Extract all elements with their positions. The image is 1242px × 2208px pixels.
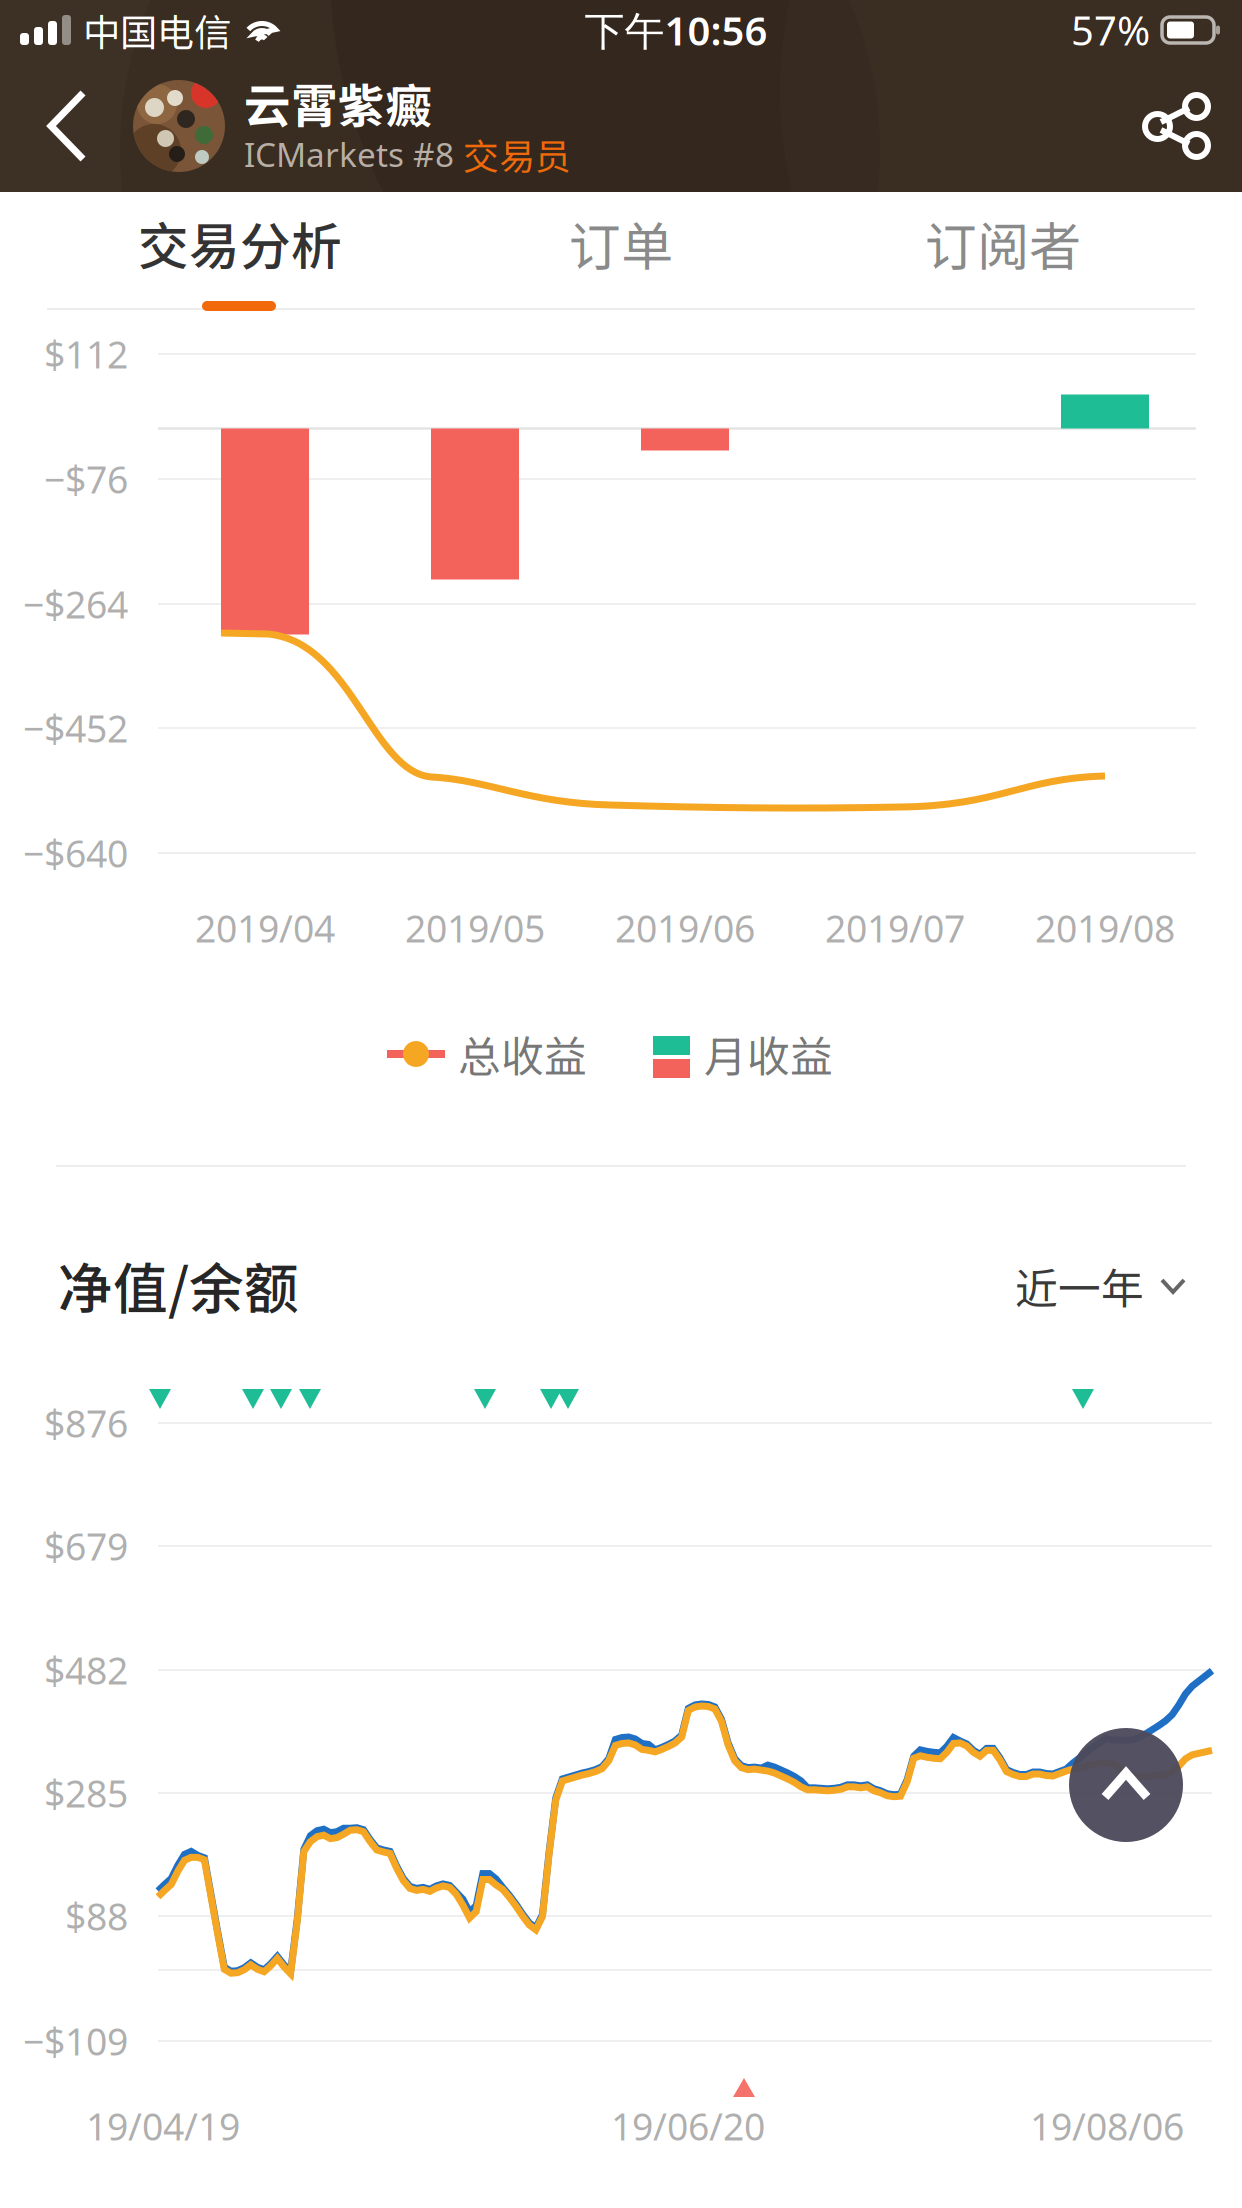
staticText: −$452 <box>23 703 128 753</box>
staticText: 下午10:56 <box>584 3 767 56</box>
staticText: 2019/04 <box>195 903 335 953</box>
staticText: 2019/05 <box>405 903 545 953</box>
button[interactable]: 交易分析 <box>55 189 425 297</box>
staticText: 订阅者 <box>925 205 1081 281</box>
button[interactable]: 订单 <box>471 189 771 297</box>
staticText: −$76 <box>44 454 128 504</box>
staticText: $112 <box>44 329 128 379</box>
staticText: 2019/07 <box>825 903 965 953</box>
staticText: 总收益 <box>458 1023 587 1085</box>
staticText: 2019/06 <box>615 903 755 953</box>
staticText: $285 <box>44 1768 128 1818</box>
staticText: 交易分析 <box>138 206 342 280</box>
staticText: $88 <box>65 1891 128 1941</box>
staticText: 近一年 <box>1015 1255 1144 1317</box>
button[interactable]: Share <box>1114 60 1242 192</box>
staticText: 订单 <box>569 205 673 281</box>
staticText: 19/06/20 <box>611 2101 765 2151</box>
staticText: 交易员 <box>463 128 571 180</box>
button[interactable]: Back <box>0 60 90 192</box>
staticText: 19/04/19 <box>86 2101 240 2151</box>
staticText: $482 <box>44 1645 128 1695</box>
button[interactable]: Scroll to top <box>1057 1716 1195 1854</box>
button[interactable]: 订阅者 <box>838 189 1168 297</box>
staticText: $876 <box>44 1398 128 1448</box>
staticText: −$264 <box>23 579 128 629</box>
staticText: 净值/余额 <box>58 1245 299 1325</box>
staticText: 月收益 <box>704 1023 833 1085</box>
staticText: 云霄紫癜 <box>244 69 432 137</box>
staticText: $679 <box>44 1521 128 1571</box>
staticText: 57% <box>1071 3 1150 56</box>
staticText: −$640 <box>23 828 128 878</box>
staticText: 2019/08 <box>1035 903 1175 953</box>
staticText: 19/08/06 <box>1030 2101 1184 2151</box>
button[interactable]: 近一年 <box>946 1242 1186 1330</box>
staticText: −$109 <box>23 2016 128 2066</box>
staticText: ICMarkets #8 <box>244 132 463 176</box>
staticText: 中国电信 <box>83 3 231 57</box>
